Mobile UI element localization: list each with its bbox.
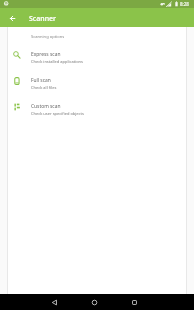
staticText: 8:28 [180,1,189,7]
button[interactable]: Express scan [8,44,186,70]
staticText: Check all files [31,85,57,90]
button[interactable]: Home [86,294,102,310]
button[interactable]: Back [46,294,62,310]
staticText: Full scan [31,77,51,84]
staticText: Express scan [31,51,61,58]
staticText: Scanner [29,14,57,24]
staticText: Custom scan [31,103,61,110]
button[interactable]: Recent apps [126,294,142,310]
staticText: Check installed applications [31,59,83,64]
staticText: Check user specified objects [31,111,84,116]
staticText: Scanning options [31,34,65,40]
button[interactable]: Full scan [8,70,186,96]
button[interactable]: Custom scan [8,96,186,122]
button[interactable]: Back [0,8,24,27]
